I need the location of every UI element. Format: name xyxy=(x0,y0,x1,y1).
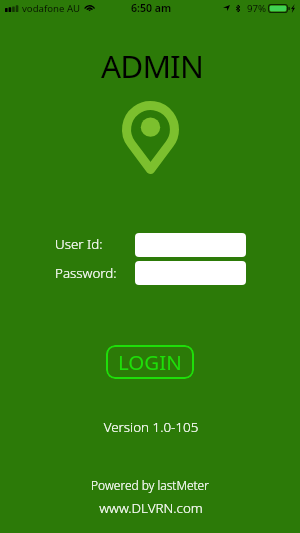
button[interactable]: User Id input xyxy=(135,233,246,257)
button[interactable]: LOGIN xyxy=(106,345,194,379)
staticText: vodafone AU xyxy=(22,2,81,15)
staticText: www.DLVRN.com xyxy=(1,499,300,517)
staticText: 97% xyxy=(247,2,267,15)
staticText: Version 1.0-105 xyxy=(1,418,300,436)
staticText: 6:50 am xyxy=(131,1,172,15)
button[interactable]: Password input xyxy=(135,261,246,285)
staticText: ADMIN xyxy=(2,44,300,87)
staticText: User Id: xyxy=(55,235,103,253)
staticText: Password: xyxy=(55,264,117,282)
staticText: Powered by lastMeter xyxy=(0,477,300,493)
staticText: LOGIN xyxy=(118,348,182,376)
